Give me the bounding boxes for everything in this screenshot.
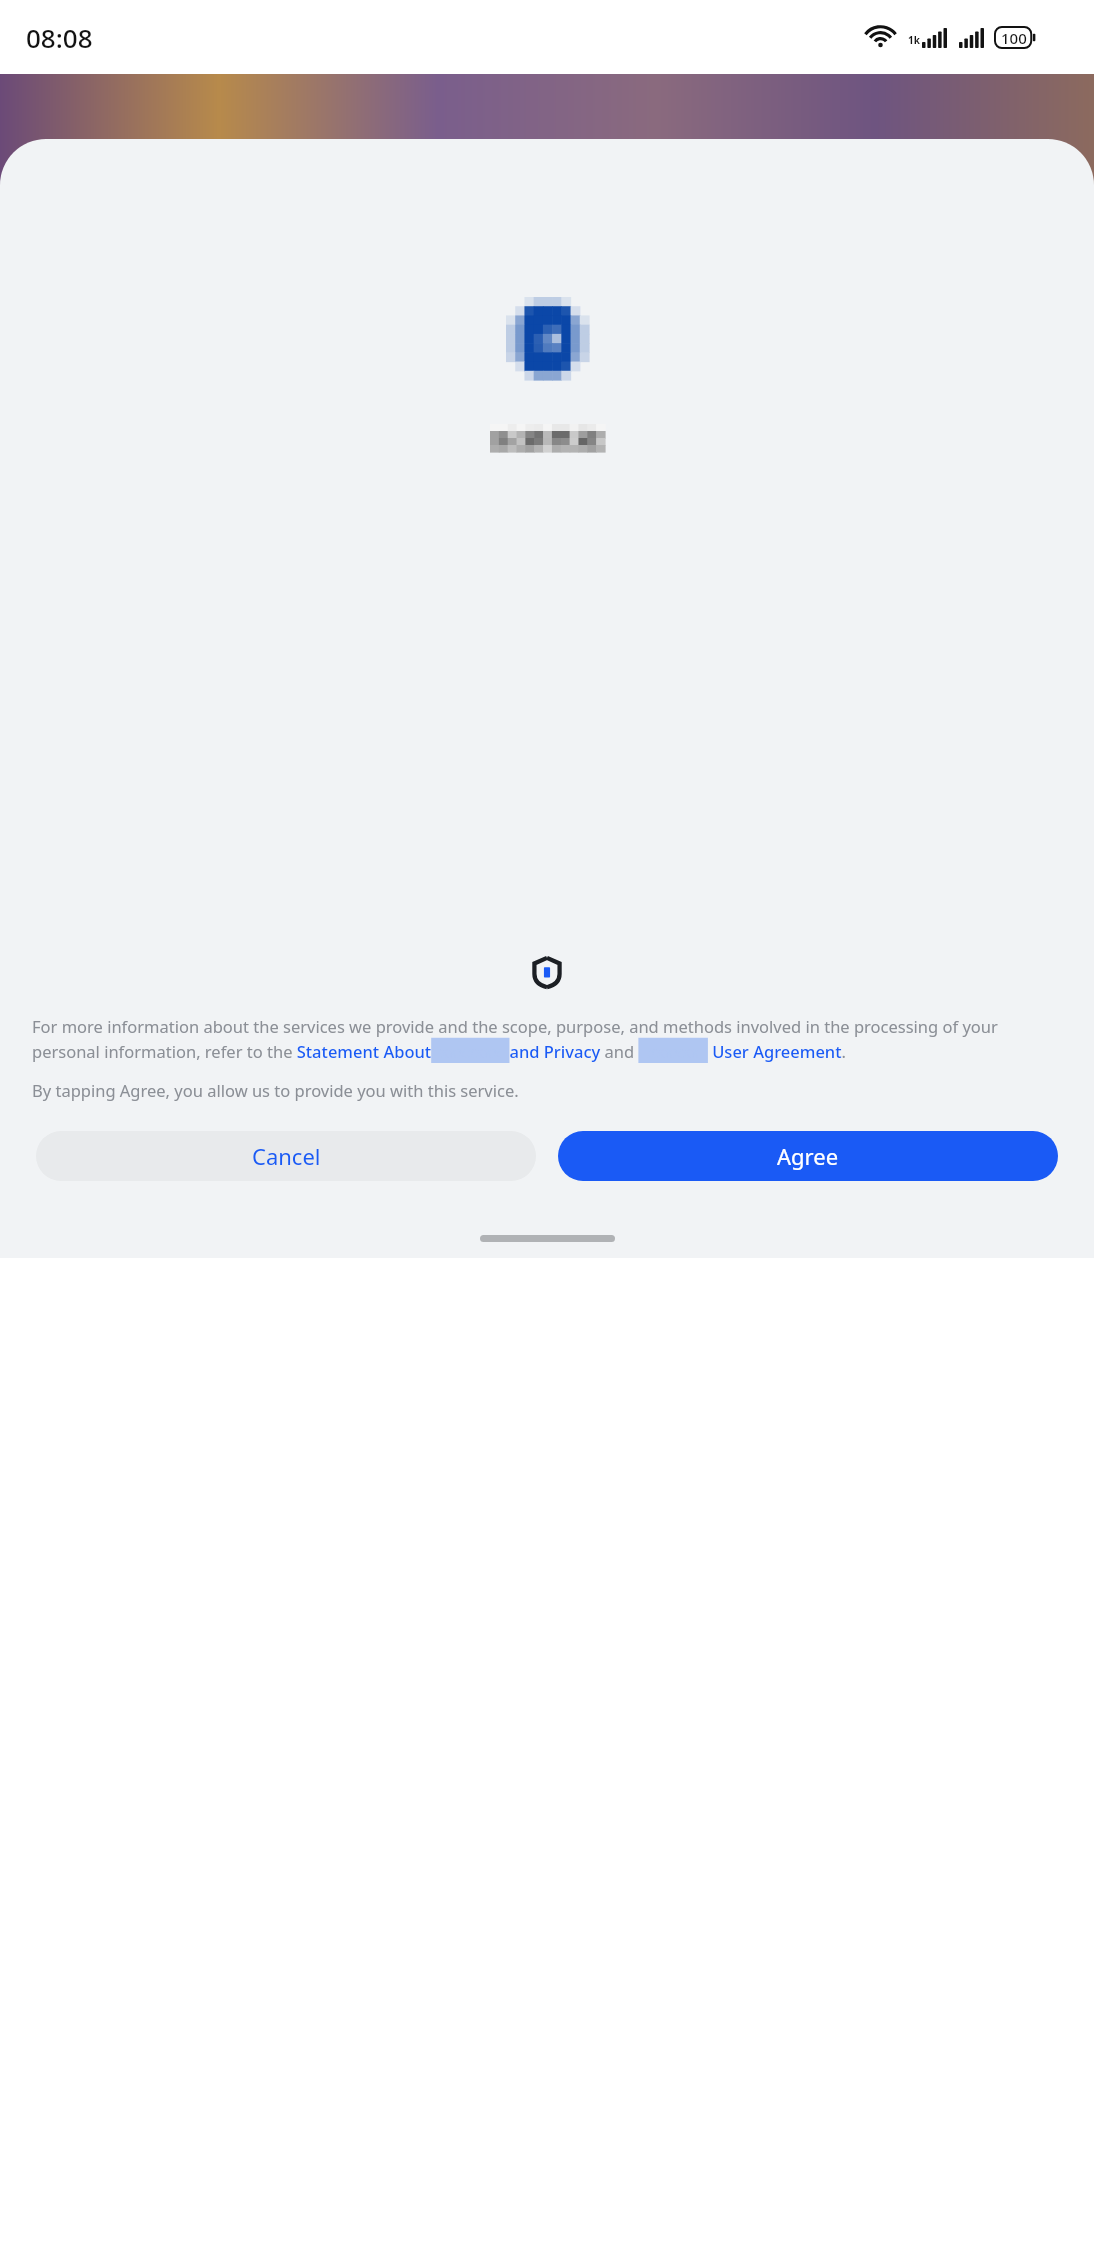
button[interactable]: Agree [558, 1131, 1058, 1181]
button[interactable]: Cancel [36, 1131, 536, 1181]
staticText: 08:08 [26, 20, 93, 55]
staticText: 1k [908, 33, 920, 47]
staticText: By tapping Agree, you allow us to provid… [32, 1079, 519, 1101]
staticText: Agree [777, 1141, 839, 1171]
staticText: 100 [1001, 28, 1027, 48]
staticText: Cancel [252, 1141, 321, 1171]
button[interactable]: For more information about the services … [32, 1015, 1062, 1063]
